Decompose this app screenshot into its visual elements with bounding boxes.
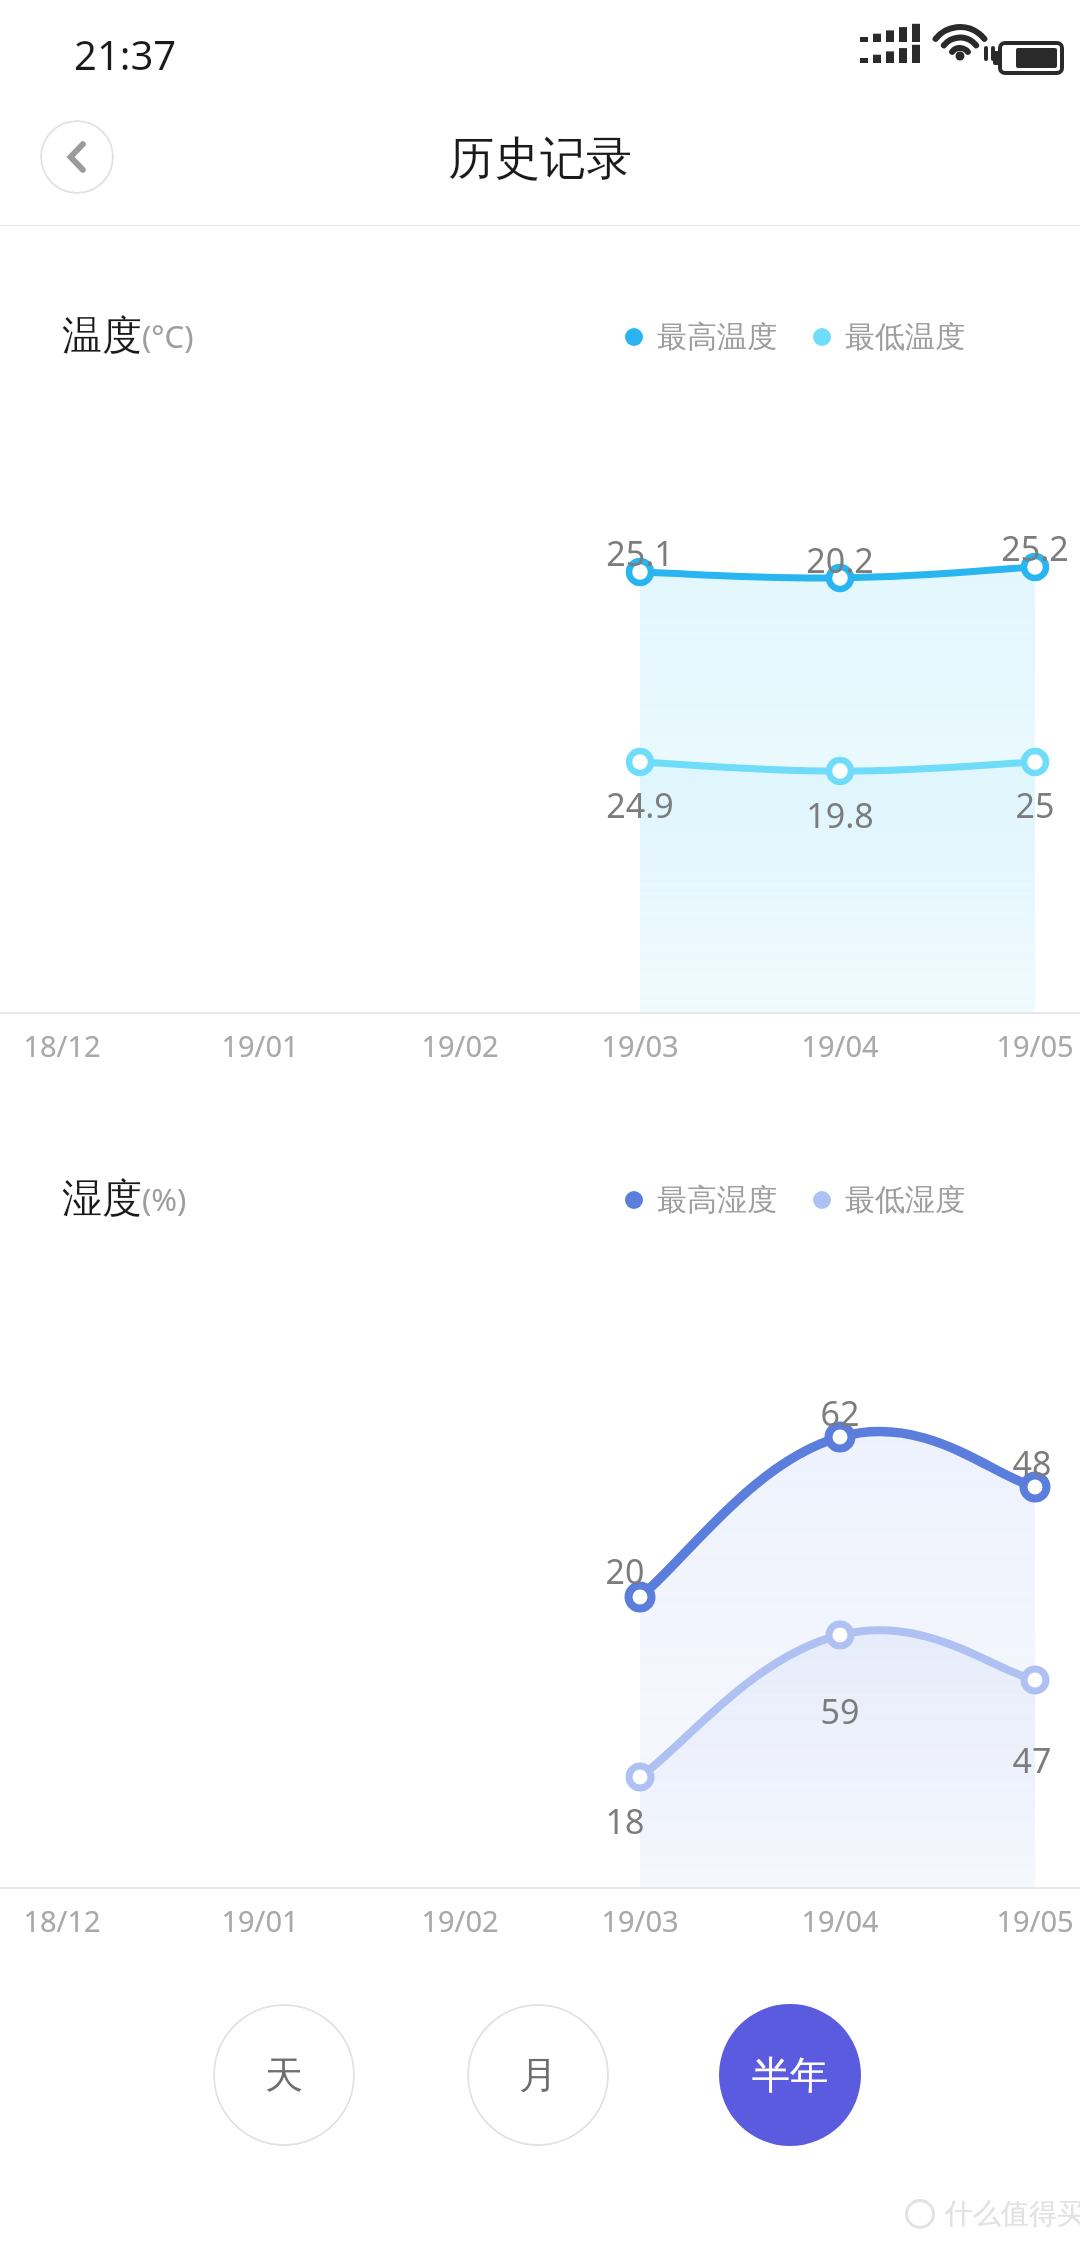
staticText: 59 [780, 1688, 900, 1734]
button[interactable]: Back [40, 120, 114, 194]
staticText: 18 [565, 1798, 685, 1844]
staticText: 天 [265, 2051, 303, 2099]
staticText: 19/04 [780, 1026, 900, 1065]
staticText: (%) [142, 1178, 187, 1220]
staticText: 半年 [752, 2051, 828, 2099]
staticText: 20 [565, 1548, 685, 1594]
staticText: 19/02 [400, 1901, 520, 1940]
staticText: 最低湿度 [845, 1181, 965, 1219]
staticText: 24.9 [580, 782, 700, 828]
staticText: 62 [780, 1390, 900, 1436]
staticText: 19/02 [400, 1026, 520, 1065]
button[interactable]: 月 [467, 2004, 609, 2146]
staticText: 19.8 [780, 792, 900, 838]
staticText: 月 [519, 2051, 557, 2099]
staticText: 48 [972, 1440, 1080, 1486]
staticText: 什么值得买 [945, 2196, 1080, 2231]
staticText: 最高湿度 [657, 1181, 777, 1219]
staticText: 湿度 [62, 1173, 142, 1223]
staticText: 18/12 [2, 1026, 122, 1065]
staticText: 历史记录 [0, 130, 1080, 188]
button[interactable]: 天 [213, 2004, 355, 2146]
staticText: 20.2 [780, 537, 900, 583]
staticText: (°C) [142, 315, 194, 357]
staticText: 19/04 [780, 1901, 900, 1940]
staticText: 25 [975, 782, 1080, 828]
staticText: 最低温度 [845, 318, 965, 356]
staticText: 25.2 [975, 525, 1080, 571]
staticText: 最高温度 [657, 318, 777, 356]
button[interactable]: 半年 [719, 2004, 861, 2146]
staticText: 47 [972, 1737, 1080, 1783]
staticText: 21:37 [74, 27, 177, 81]
staticText: 19/01 [200, 1901, 320, 1940]
staticText: 19/01 [200, 1026, 320, 1065]
staticText: 25.1 [580, 530, 700, 576]
staticText: 19/03 [580, 1026, 700, 1065]
staticText: 19/03 [580, 1901, 700, 1940]
staticText: 19/05 [975, 1901, 1080, 1940]
staticText: 18/12 [2, 1901, 122, 1940]
staticText: 温度 [62, 310, 142, 360]
staticText: 19/05 [975, 1026, 1080, 1065]
